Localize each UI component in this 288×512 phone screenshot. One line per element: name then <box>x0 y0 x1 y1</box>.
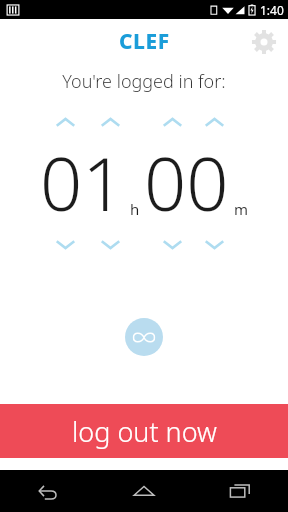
button[interactable]: Settings <box>247 25 281 59</box>
button[interactable]: Decrease hours tens <box>51 234 79 254</box>
staticText: 01 <box>40 132 125 233</box>
staticText: log out now <box>72 413 217 450</box>
staticText: h <box>130 199 140 219</box>
staticText: m <box>234 199 249 219</box>
staticText: You're logged in for: <box>0 69 288 94</box>
button[interactable]: Decrease minutes tens <box>158 234 186 254</box>
button[interactable]: Decrease minutes ones <box>200 234 228 254</box>
button[interactable]: Increase minutes tens <box>158 112 186 132</box>
button[interactable]: Back <box>0 470 96 512</box>
staticText: 1:40 <box>260 2 284 18</box>
button[interactable]: Increase hours tens <box>51 112 79 132</box>
button[interactable]: Decrease hours ones <box>96 234 124 254</box>
button[interactable]: log out now <box>0 404 288 458</box>
button[interactable]: Home <box>96 470 192 512</box>
staticText: 00 <box>144 132 229 233</box>
staticText: CLEF <box>119 27 170 56</box>
button[interactable]: Recent apps <box>192 470 288 512</box>
button[interactable]: Increase hours ones <box>96 112 124 132</box>
button[interactable]: Increase minutes ones <box>200 112 228 132</box>
button[interactable]: Stay logged in indefinitely <box>125 318 163 356</box>
